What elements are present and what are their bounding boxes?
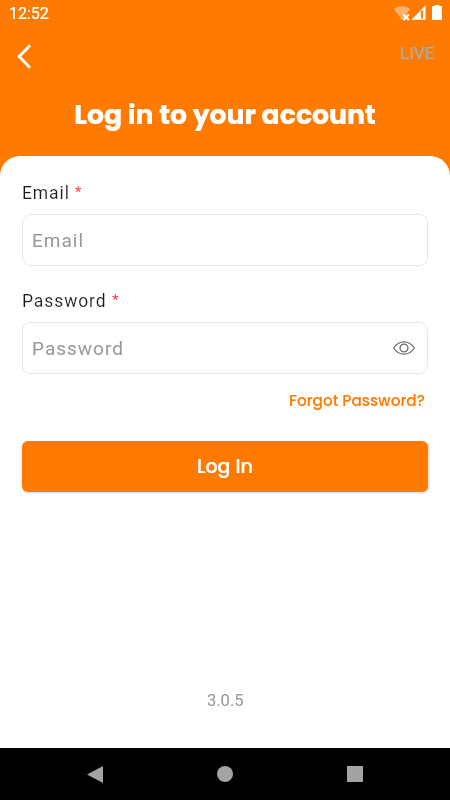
staticText: 12:52 bbox=[9, 4, 49, 23]
button[interactable]: Show password bbox=[390, 334, 418, 362]
staticText: Password bbox=[32, 337, 124, 359]
button[interactable]: Recents bbox=[331, 750, 379, 798]
staticText: 3.0.5 bbox=[207, 691, 244, 710]
button[interactable]: LIVE bbox=[400, 43, 435, 63]
button[interactable]: Forgot Password? bbox=[289, 390, 425, 411]
staticText: * bbox=[75, 183, 82, 201]
staticText: Password bbox=[22, 291, 107, 312]
button[interactable]: Email bbox=[22, 214, 428, 266]
button[interactable]: Home bbox=[201, 750, 249, 798]
button[interactable]: Back bbox=[4, 36, 44, 76]
button[interactable]: Password bbox=[22, 322, 428, 374]
staticText: Log In bbox=[197, 453, 253, 480]
staticText: LIVE bbox=[400, 43, 435, 63]
button[interactable]: Back bbox=[71, 750, 119, 798]
staticText: Email bbox=[22, 183, 70, 204]
staticText: * bbox=[112, 291, 119, 309]
staticText: Email bbox=[32, 229, 85, 251]
staticText: Log in to your account bbox=[74, 96, 376, 133]
button[interactable]: Log In bbox=[22, 441, 428, 492]
